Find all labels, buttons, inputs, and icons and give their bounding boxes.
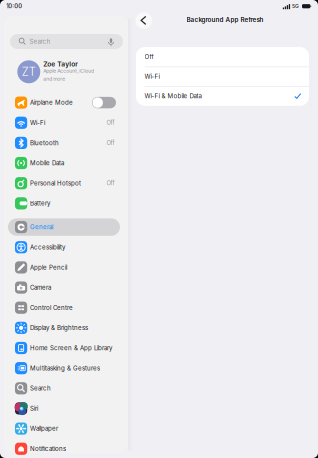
button[interactable]: Back (136, 12, 152, 29)
staticText: Bluetooth (30, 139, 59, 147)
staticText: Background App Refresh (187, 16, 264, 24)
staticText: Display & Brightness (30, 324, 88, 331)
staticText: General (30, 223, 53, 231)
staticText: Off (145, 53, 154, 60)
button[interactable]: Accessibility (8, 239, 120, 256)
staticText: Wi-Fi & Mobile Data (145, 92, 202, 100)
staticText: Wallpaper (30, 425, 58, 432)
button[interactable]: Multitasking & Gestures (8, 359, 120, 377)
button[interactable]: Wi-Fi (8, 114, 120, 131)
button[interactable]: Wallpaper (8, 420, 120, 437)
staticText: Airplane Mode (30, 99, 73, 106)
staticText: and more (43, 76, 65, 82)
button[interactable]: Off (136, 47, 309, 67)
button[interactable]: Airplane Mode (8, 94, 120, 111)
staticText: Zoe Taylor (43, 60, 78, 68)
staticText: Personal Hotspot (30, 179, 81, 187)
button[interactable]: Bluetooth (8, 134, 120, 152)
button[interactable]: Home Screen & App Library (8, 339, 120, 357)
staticText: Home Screen & App Library (30, 344, 112, 352)
staticText: ZT (22, 65, 36, 78)
staticText: Off (106, 119, 114, 126)
staticText: Control Centre (30, 304, 73, 311)
staticText: Search (30, 385, 51, 392)
button[interactable]: ZT (10, 57, 125, 87)
button[interactable]: Camera (8, 279, 120, 296)
staticText: Wi-Fi (30, 119, 45, 126)
staticText: Apple Account, iCloud (43, 68, 94, 74)
staticText: Multitasking & Gestures (30, 364, 100, 372)
staticText: Camera (30, 284, 51, 291)
staticText: 5G (292, 3, 299, 9)
staticText: Apple Pencil (30, 264, 67, 271)
button[interactable]: General (8, 218, 120, 236)
button[interactable]: Notifications (8, 440, 120, 457)
staticText: Accessibility (30, 243, 65, 251)
button[interactable]: Control Centre (8, 299, 120, 316)
button[interactable]: Apple Pencil (8, 259, 120, 276)
button[interactable]: Siri (8, 400, 120, 417)
button[interactable]: Personal Hotspot (8, 174, 120, 192)
staticText: Mobile Data (30, 159, 64, 167)
staticText: Siri (30, 405, 38, 412)
staticText: Off (106, 139, 114, 146)
button[interactable]: Display & Brightness (8, 319, 120, 336)
staticText: Wi-Fi (145, 73, 160, 80)
staticText: Off (106, 180, 114, 187)
button[interactable]: Search (8, 380, 120, 397)
button[interactable]: Battery (8, 195, 120, 212)
button[interactable]: Search (10, 34, 123, 49)
button[interactable]: Wi-Fi & Mobile Data (136, 86, 309, 106)
button[interactable]: Mobile Data (8, 154, 120, 172)
staticText: Search (29, 38, 50, 45)
staticText: 10:00 (6, 3, 22, 10)
button[interactable]: Wi-Fi (136, 67, 309, 86)
staticText: Notifications (30, 445, 66, 452)
staticText: Battery (30, 200, 50, 207)
